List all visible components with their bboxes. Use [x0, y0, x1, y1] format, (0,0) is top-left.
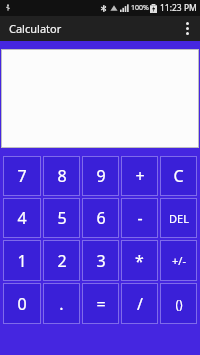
button[interactable]: 2 — [44, 241, 79, 280]
staticText: 1 — [17, 250, 27, 272]
staticText: 4 — [17, 207, 27, 229]
staticText: 8 — [57, 165, 67, 187]
button[interactable]: 4 — [4, 199, 40, 237]
staticText: 6 — [96, 207, 106, 229]
staticText: 3 — [96, 250, 106, 272]
button[interactable]: () — [161, 284, 196, 323]
button[interactable]: 1 — [4, 241, 40, 280]
staticText: () — [175, 296, 183, 312]
staticText: 9 — [96, 165, 106, 187]
staticText: + — [135, 165, 145, 187]
button[interactable]: 6 — [83, 199, 118, 237]
staticText: - — [137, 207, 143, 229]
staticText: 5 — [57, 207, 67, 229]
staticText: 7 — [17, 165, 27, 187]
staticText: 11:23 PM — [160, 2, 197, 14]
button[interactable]: * — [122, 241, 157, 280]
staticText: +/- — [172, 253, 186, 268]
staticText: 2 — [57, 250, 67, 272]
button[interactable]: 8 — [44, 157, 79, 195]
staticText: C — [173, 165, 184, 187]
button[interactable]: = — [83, 284, 118, 323]
button[interactable]: 5 — [44, 199, 79, 237]
staticText: 0 — [17, 293, 27, 315]
staticText: / — [137, 293, 143, 315]
button[interactable]: / — [122, 284, 157, 323]
staticText: Calculator — [9, 21, 62, 36]
staticText: * — [135, 250, 144, 272]
staticText: 100% — [131, 3, 149, 13]
button[interactable]: C — [161, 157, 196, 195]
staticText: = — [96, 293, 106, 315]
staticText: . — [59, 293, 64, 315]
button[interactable]: - — [122, 199, 157, 237]
button[interactable]: +/- — [161, 241, 196, 280]
button[interactable]: . — [44, 284, 79, 323]
button[interactable]: DEL — [161, 199, 196, 237]
button[interactable]: 0 — [4, 284, 40, 323]
button[interactable]: 7 — [4, 157, 40, 195]
button[interactable]: + — [122, 157, 157, 195]
button[interactable]: More options — [174, 16, 200, 41]
staticText: DEL — [169, 211, 189, 226]
button[interactable]: 3 — [83, 241, 118, 280]
button[interactable]: 9 — [83, 157, 118, 195]
